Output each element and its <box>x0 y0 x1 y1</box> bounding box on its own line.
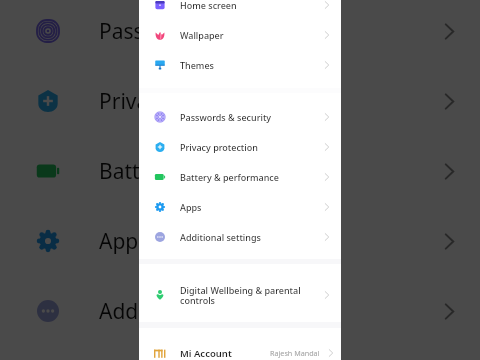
staticText: Additional settings <box>180 231 313 243</box>
button[interactable]: Privacy protection <box>0 67 480 135</box>
button[interactable]: Apps <box>139 192 341 222</box>
button[interactable]: Home screen <box>139 0 341 20</box>
button[interactable]: Digital Wellbeing & parental controls <box>139 277 341 313</box>
staticText: Passwords & security <box>180 111 313 123</box>
staticText: Passwords & security <box>99 17 308 46</box>
staticText: Apps <box>99 227 149 256</box>
button[interactable]: Apps <box>0 207 480 275</box>
staticText: Battery & performance <box>180 171 313 183</box>
staticText: Privacy protection <box>180 141 313 153</box>
staticText: Privacy protection <box>99 87 277 116</box>
staticText: Battery & performance <box>99 157 326 186</box>
button[interactable]: Passwords & security <box>139 102 341 132</box>
button[interactable]: Additional settings <box>0 277 480 345</box>
button[interactable]: Battery & performance <box>0 137 480 205</box>
staticText: Home screen <box>180 0 313 11</box>
staticText: Additional settings <box>99 297 284 326</box>
button[interactable]: Themes <box>139 50 341 80</box>
staticText: Apps <box>180 201 313 213</box>
staticText: Digital Wellbeing & parental controls <box>180 284 313 307</box>
button[interactable]: Battery & performance <box>139 162 341 192</box>
staticText: Rajesh Mandal <box>270 348 320 358</box>
button[interactable]: Passwords & security <box>0 0 480 65</box>
button[interactable]: Wallpaper <box>139 20 341 50</box>
staticText: Mi Account <box>180 347 270 360</box>
staticText: Themes <box>180 59 313 71</box>
staticText: Wallpaper <box>180 29 313 41</box>
button[interactable]: Mi Account <box>139 340 341 360</box>
button[interactable]: Additional settings <box>139 222 341 252</box>
button[interactable]: Privacy protection <box>139 132 341 162</box>
